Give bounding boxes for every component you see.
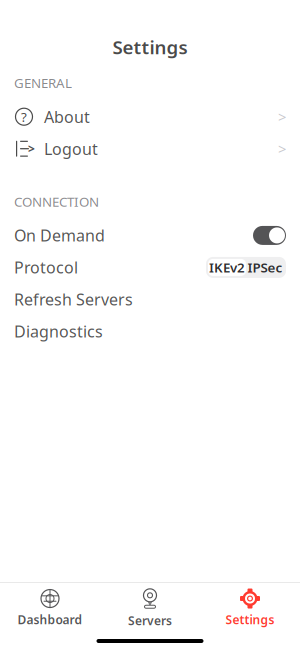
button[interactable]: Diagnostics — [0, 315, 300, 347]
staticText: > — [28, 141, 35, 157]
button[interactable]: Refresh Servers — [0, 283, 300, 315]
staticText: CONNECTION — [14, 193, 99, 210]
button[interactable]: Dashboard — [0, 586, 100, 630]
staticText: ? — [21, 108, 27, 126]
staticText: About — [44, 106, 90, 127]
button[interactable]: Settings — [200, 586, 300, 630]
staticText: Logout — [44, 138, 98, 159]
staticText: IKEv2 — [209, 259, 245, 276]
button[interactable]: IPSec — [246, 259, 284, 276]
staticText: Settings — [112, 35, 187, 59]
staticText: IPSec — [247, 259, 282, 276]
staticText: On Demand — [14, 225, 105, 246]
staticText: Refresh Servers — [14, 289, 133, 310]
button[interactable]: On Demand — [253, 226, 286, 245]
staticText: Dashboard — [17, 611, 82, 627]
staticText: GENERAL — [14, 74, 72, 92]
staticText: Servers — [128, 612, 172, 628]
button[interactable]: ? — [0, 101, 300, 133]
staticText: > — [278, 107, 286, 126]
staticText: Diagnostics — [14, 321, 103, 342]
staticText: Protocol — [14, 257, 78, 278]
button[interactable]: IKEv2 — [208, 259, 246, 276]
staticText: > — [278, 139, 286, 158]
button[interactable]: Servers — [100, 586, 200, 630]
button[interactable]: > — [0, 133, 300, 165]
staticText: Settings — [225, 611, 274, 627]
